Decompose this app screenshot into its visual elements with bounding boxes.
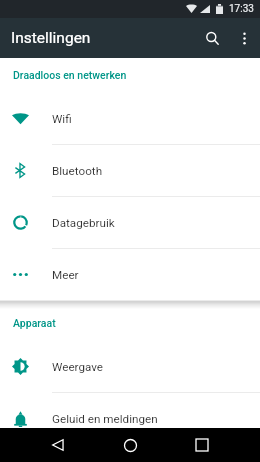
button[interactable]: Search bbox=[194, 18, 230, 58]
staticText: Instellingen bbox=[11, 29, 91, 47]
staticText: Bluetooth bbox=[52, 164, 103, 178]
button[interactable]: Meer bbox=[0, 249, 260, 301]
staticText: Datagebruik bbox=[52, 216, 115, 230]
staticText: Draadloos en netwerken bbox=[13, 69, 127, 81]
staticText: Meer bbox=[52, 268, 79, 282]
button[interactable]: Back bbox=[44, 428, 72, 462]
button[interactable]: More options bbox=[230, 18, 258, 58]
button[interactable]: Home bbox=[116, 428, 144, 462]
button[interactable]: Recents bbox=[188, 428, 216, 462]
staticText: Apparaat bbox=[13, 317, 56, 329]
button[interactable]: Weergave bbox=[0, 341, 260, 393]
button[interactable]: Datagebruik bbox=[0, 197, 260, 249]
staticText: Geluid en meldingen bbox=[52, 412, 158, 426]
staticText: Wifi bbox=[52, 112, 72, 126]
button[interactable]: Wifi bbox=[0, 93, 260, 145]
button[interactable]: Geluid en meldingen bbox=[0, 393, 260, 445]
staticText: Weergave bbox=[52, 360, 104, 374]
button[interactable]: Bluetooth bbox=[0, 145, 260, 197]
staticText: 17:33 bbox=[229, 3, 254, 15]
